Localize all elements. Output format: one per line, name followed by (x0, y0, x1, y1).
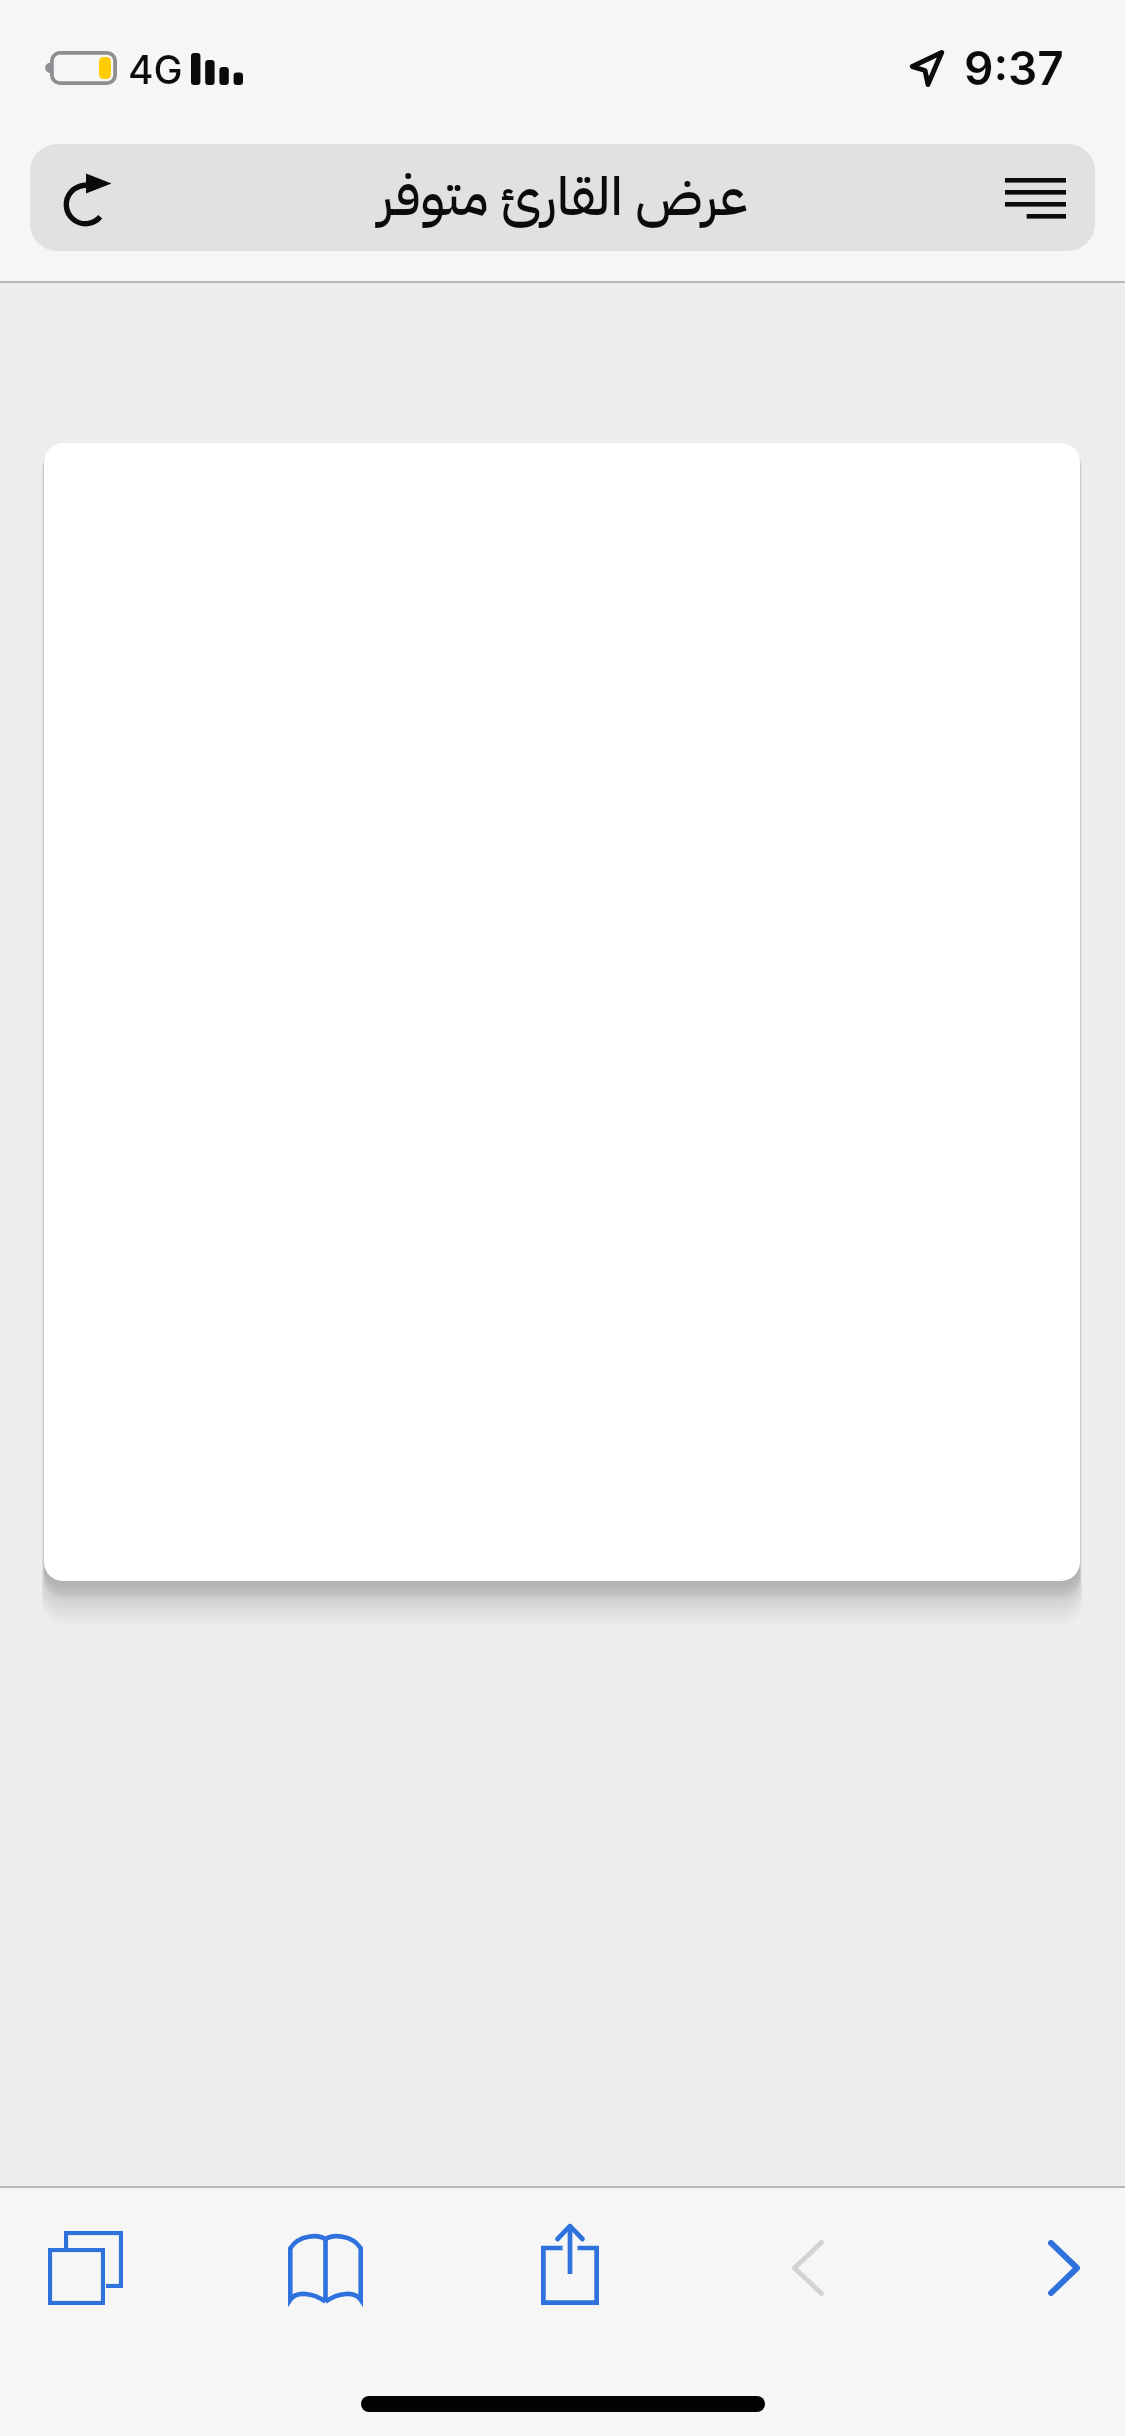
button[interactable]: Reader view (997, 172, 1073, 224)
button[interactable]: Reload (30, 144, 1095, 251)
button[interactable]: Tabs (0, 2188, 172, 2348)
button[interactable]: Reload (60, 175, 114, 229)
button[interactable]: Share (398, 2188, 652, 2348)
button[interactable]: Bookmarks (172, 2188, 398, 2348)
staticText: عرض القارئ متوفر (378, 157, 748, 237)
button[interactable]: Back (652, 2188, 906, 2348)
staticText: 9:37 (964, 40, 1064, 96)
staticText: 4G (128, 46, 183, 93)
button[interactable]: Forward (906, 2188, 1125, 2348)
